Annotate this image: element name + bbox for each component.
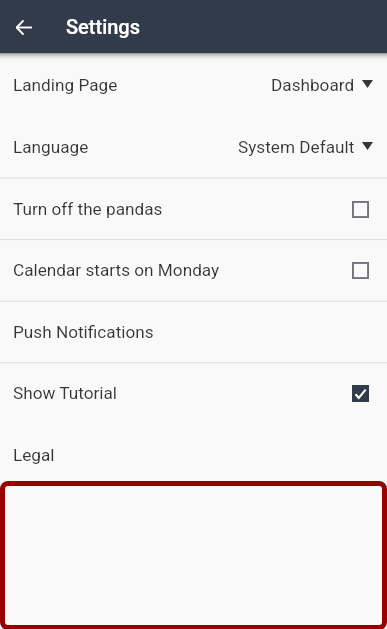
staticText: Language bbox=[13, 137, 89, 157]
staticText: Show Tutorial bbox=[13, 383, 118, 403]
staticText: Dashboard bbox=[271, 75, 355, 95]
button[interactable]: Push Notifications bbox=[0, 301, 387, 363]
staticText: System Default bbox=[238, 137, 355, 157]
staticText: Landing Page bbox=[13, 75, 118, 95]
staticText: Turn off the pandas bbox=[13, 199, 163, 219]
staticText: Push Notifications bbox=[13, 322, 154, 342]
button[interactable]: Legal bbox=[0, 424, 387, 486]
button[interactable]: Calendar starts on Monday bbox=[0, 239, 387, 301]
button[interactable]: Back bbox=[0, 3, 48, 51]
button[interactable]: Show Tutorial bbox=[0, 362, 387, 424]
staticText: Legal bbox=[13, 445, 55, 465]
button[interactable]: Landing Page bbox=[0, 54, 387, 116]
staticText: Calendar starts on Monday bbox=[13, 260, 220, 280]
button[interactable]: Turn off the pandas bbox=[0, 178, 387, 240]
staticText: Settings bbox=[66, 15, 141, 38]
button[interactable]: Language bbox=[0, 116, 387, 178]
